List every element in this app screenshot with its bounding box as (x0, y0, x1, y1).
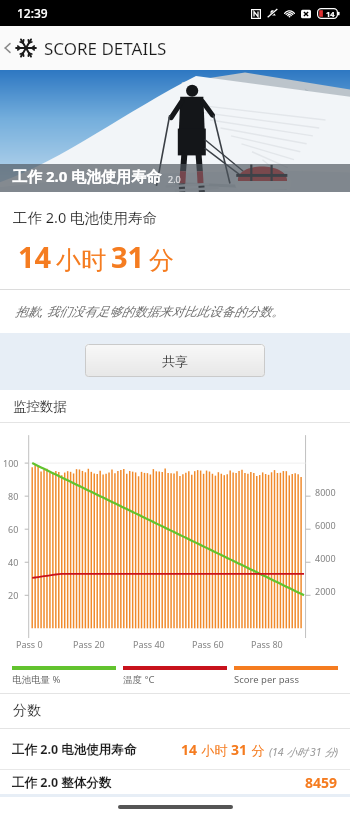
staticText: 4000 (315, 552, 336, 564)
button[interactable]: Back (0, 26, 15, 70)
button[interactable]: 工作 2.0 电池使用寿命 (0, 729, 350, 769)
staticText: 14 (181, 740, 198, 759)
staticText: Score per pass (234, 673, 299, 686)
staticText: 60 (8, 523, 19, 535)
staticText: (14 小时 31 分) (269, 745, 338, 759)
staticText: Pass 40 (133, 638, 165, 650)
staticText: 20 (8, 589, 19, 601)
staticText: 共享 (162, 353, 188, 369)
staticText: 31 (111, 237, 145, 276)
staticText: 8459 (305, 773, 338, 792)
staticText: 工作 2.0 电池使用寿命 (12, 166, 162, 186)
staticText: 温度 °C (123, 673, 155, 686)
staticText: 40 (8, 556, 19, 568)
staticText: 工作 2.0 电池使用寿命 (13, 207, 158, 227)
staticText: 分 (149, 245, 174, 276)
staticText: 小时 (56, 245, 106, 276)
staticText: 监控数据 (13, 398, 67, 415)
staticText: 80 (8, 490, 19, 502)
staticText: 小时 (198, 741, 231, 759)
staticText: Pass 80 (251, 638, 283, 650)
staticText: 抱歉, 我们没有足够的数据来对比此设备的分数。 (15, 303, 284, 320)
staticText: Pass 20 (73, 638, 105, 650)
staticText: 31 (231, 740, 248, 759)
staticText: 分 (248, 741, 265, 759)
staticText: 8000 (315, 486, 336, 498)
button[interactable]: 共享 (85, 344, 265, 377)
staticText: 100 (3, 457, 19, 469)
staticText: 14 (18, 237, 52, 276)
staticText: Pass 60 (192, 638, 224, 650)
staticText: 2.0 (168, 173, 181, 185)
staticText: 2000 (315, 585, 336, 597)
staticText: Pass 0 (16, 638, 43, 650)
staticText: 工作 2.0 整体分数 (12, 774, 112, 791)
staticText: 12:39 (17, 5, 48, 21)
staticText: SCORE DETAILS (44, 37, 167, 60)
staticText: 6000 (315, 519, 336, 531)
staticText: 14 (326, 9, 335, 19)
button[interactable]: 工作 2.0 整体分数 (0, 770, 350, 794)
staticText: 分数 (13, 702, 41, 720)
staticText: 工作 2.0 电池使用寿命 (12, 741, 137, 758)
staticText: 电池电量 % (12, 673, 61, 686)
